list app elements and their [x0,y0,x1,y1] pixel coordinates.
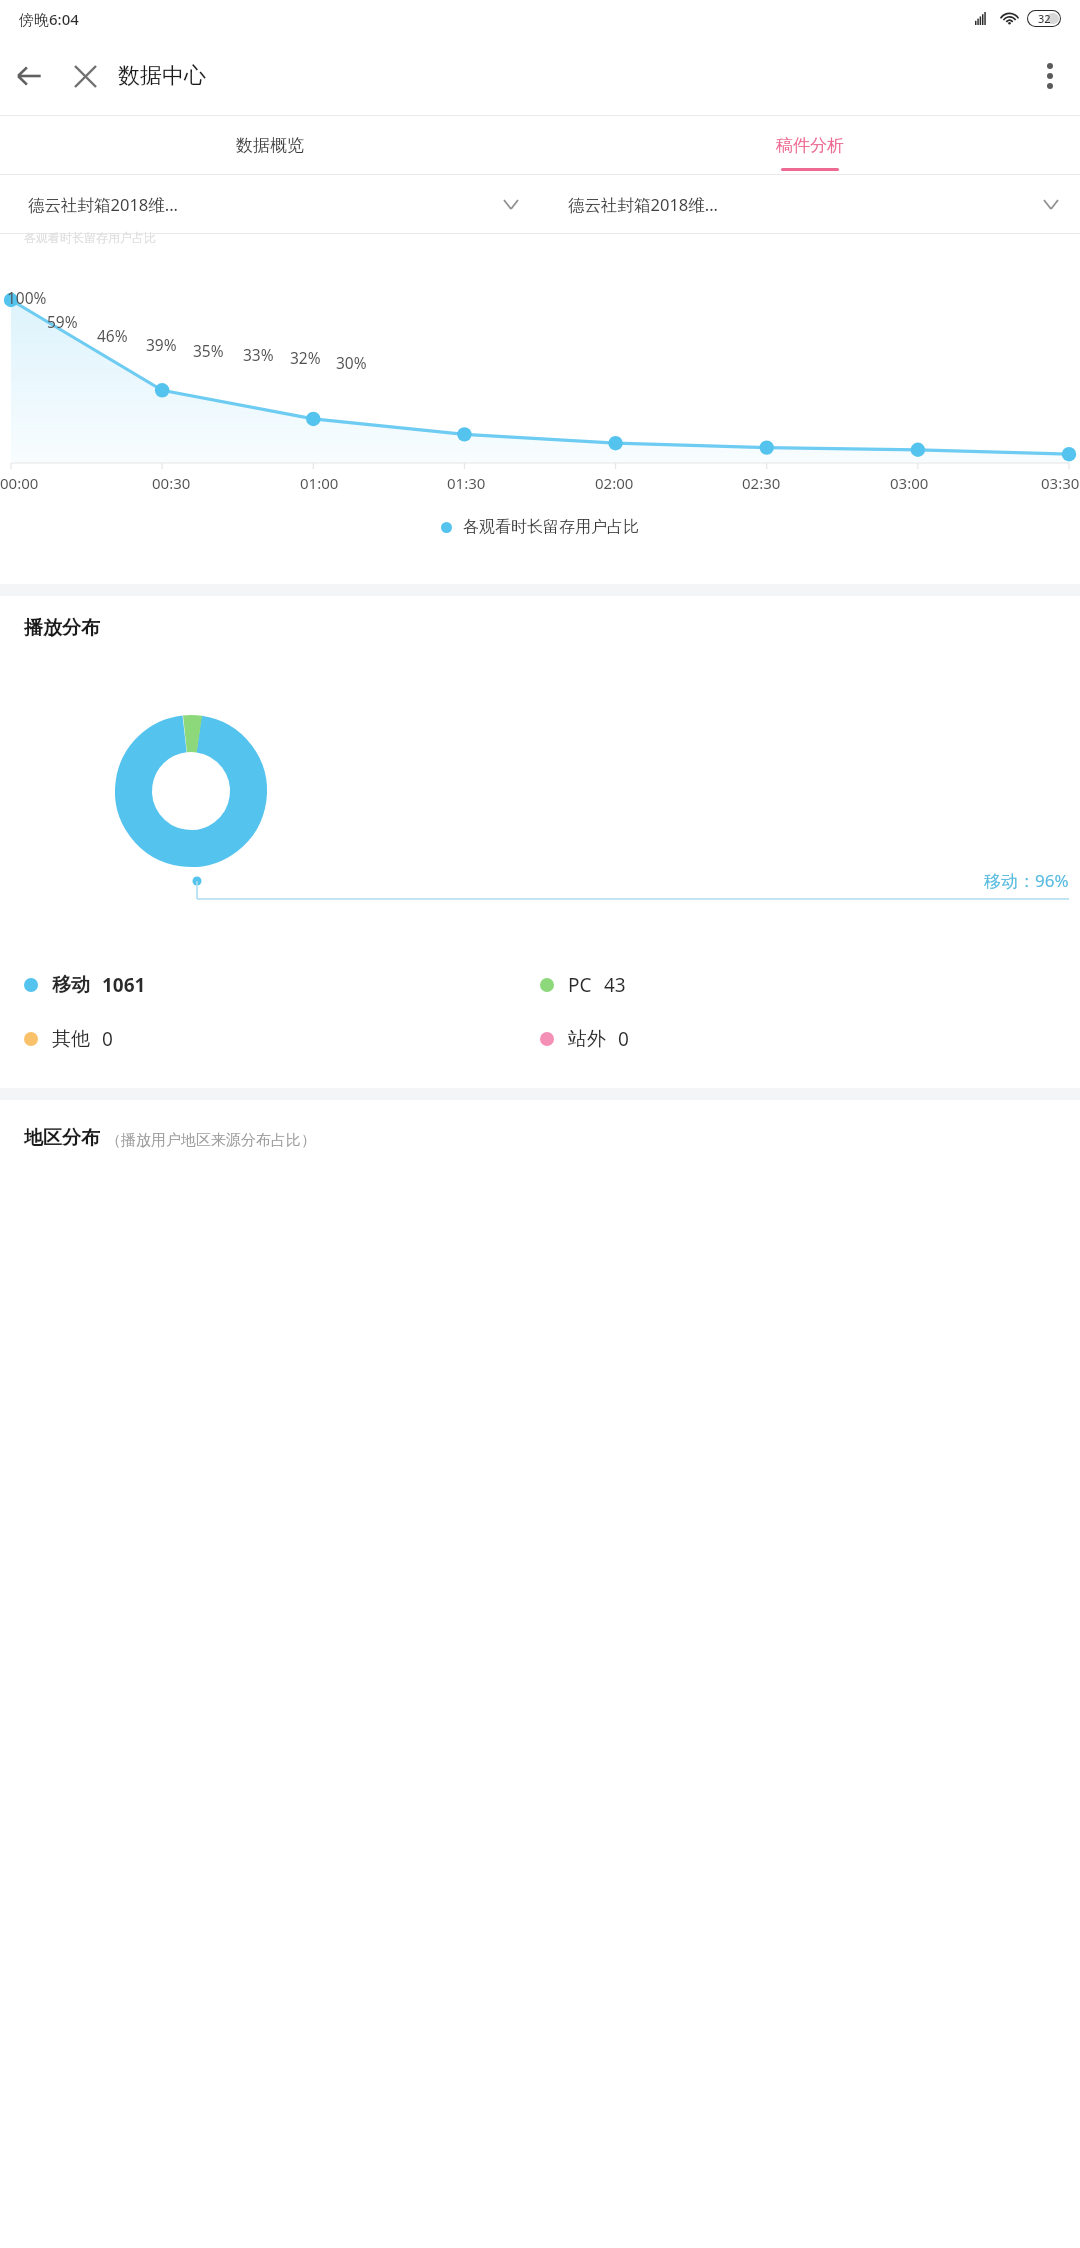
staticText: 地区分布 [24,1126,100,1150]
staticText: 01:00 [300,473,339,493]
button[interactable]: 移动 [24,970,540,1000]
staticText: 02:30 [742,473,781,493]
staticText: 德云社封箱2018维... [568,193,719,216]
staticText: 59% [47,311,78,332]
staticText: 0 [618,1026,629,1052]
staticText: 39% [146,334,177,355]
button[interactable]: More options [1020,46,1080,106]
staticText: 32 [1038,11,1051,26]
staticText: 02:00 [595,473,634,493]
staticText: 100% [7,287,47,308]
button[interactable]: 站外 [540,1024,1056,1054]
staticText: （播放用户地区来源分布占比） [106,1131,316,1150]
button[interactable]: 德云社封箱2018维... [540,175,1080,233]
staticText: 32% [290,347,321,368]
button[interactable]: 稿件分析 [540,116,1080,174]
button[interactable]: Back [0,47,58,105]
staticText: 46% [97,325,128,346]
staticText: 数据概览 [236,135,304,156]
staticText: 0 [102,1026,113,1052]
staticText: 数据中心 [118,62,206,90]
staticText: 30% [336,352,367,373]
staticText: 移动 [52,973,90,997]
staticText: 01:30 [447,473,486,493]
button[interactable]: 数据概览 [0,116,540,174]
staticText: 其他 [52,1027,90,1051]
button[interactable]: 德云社封箱2018维... [0,175,540,233]
staticText: PC [568,972,592,998]
staticText: 00:00 [0,473,39,493]
staticText: 德云社封箱2018维... [28,193,179,216]
staticText: 00:30 [152,473,191,493]
staticText: 43 [604,972,626,998]
staticText: 03:30 [1041,473,1080,493]
staticText: 各观看时长留存用户占比 [463,517,639,537]
button[interactable]: 其他 [24,1024,540,1054]
staticText: 傍晚6:04 [19,9,79,29]
staticText: 33% [243,344,274,365]
button[interactable]: Close [58,49,112,103]
staticText: 站外 [568,1027,606,1051]
staticText: 1061 [102,972,146,998]
button[interactable]: PC [540,970,1056,1000]
staticText: 35% [193,340,224,361]
staticText: 移动：96% [984,869,1069,892]
staticText: 播放分布 [24,616,100,640]
staticText: 03:00 [890,473,929,493]
staticText: 各观看时长留存用户占比 [24,230,156,245]
staticText: 稿件分析 [776,135,844,156]
